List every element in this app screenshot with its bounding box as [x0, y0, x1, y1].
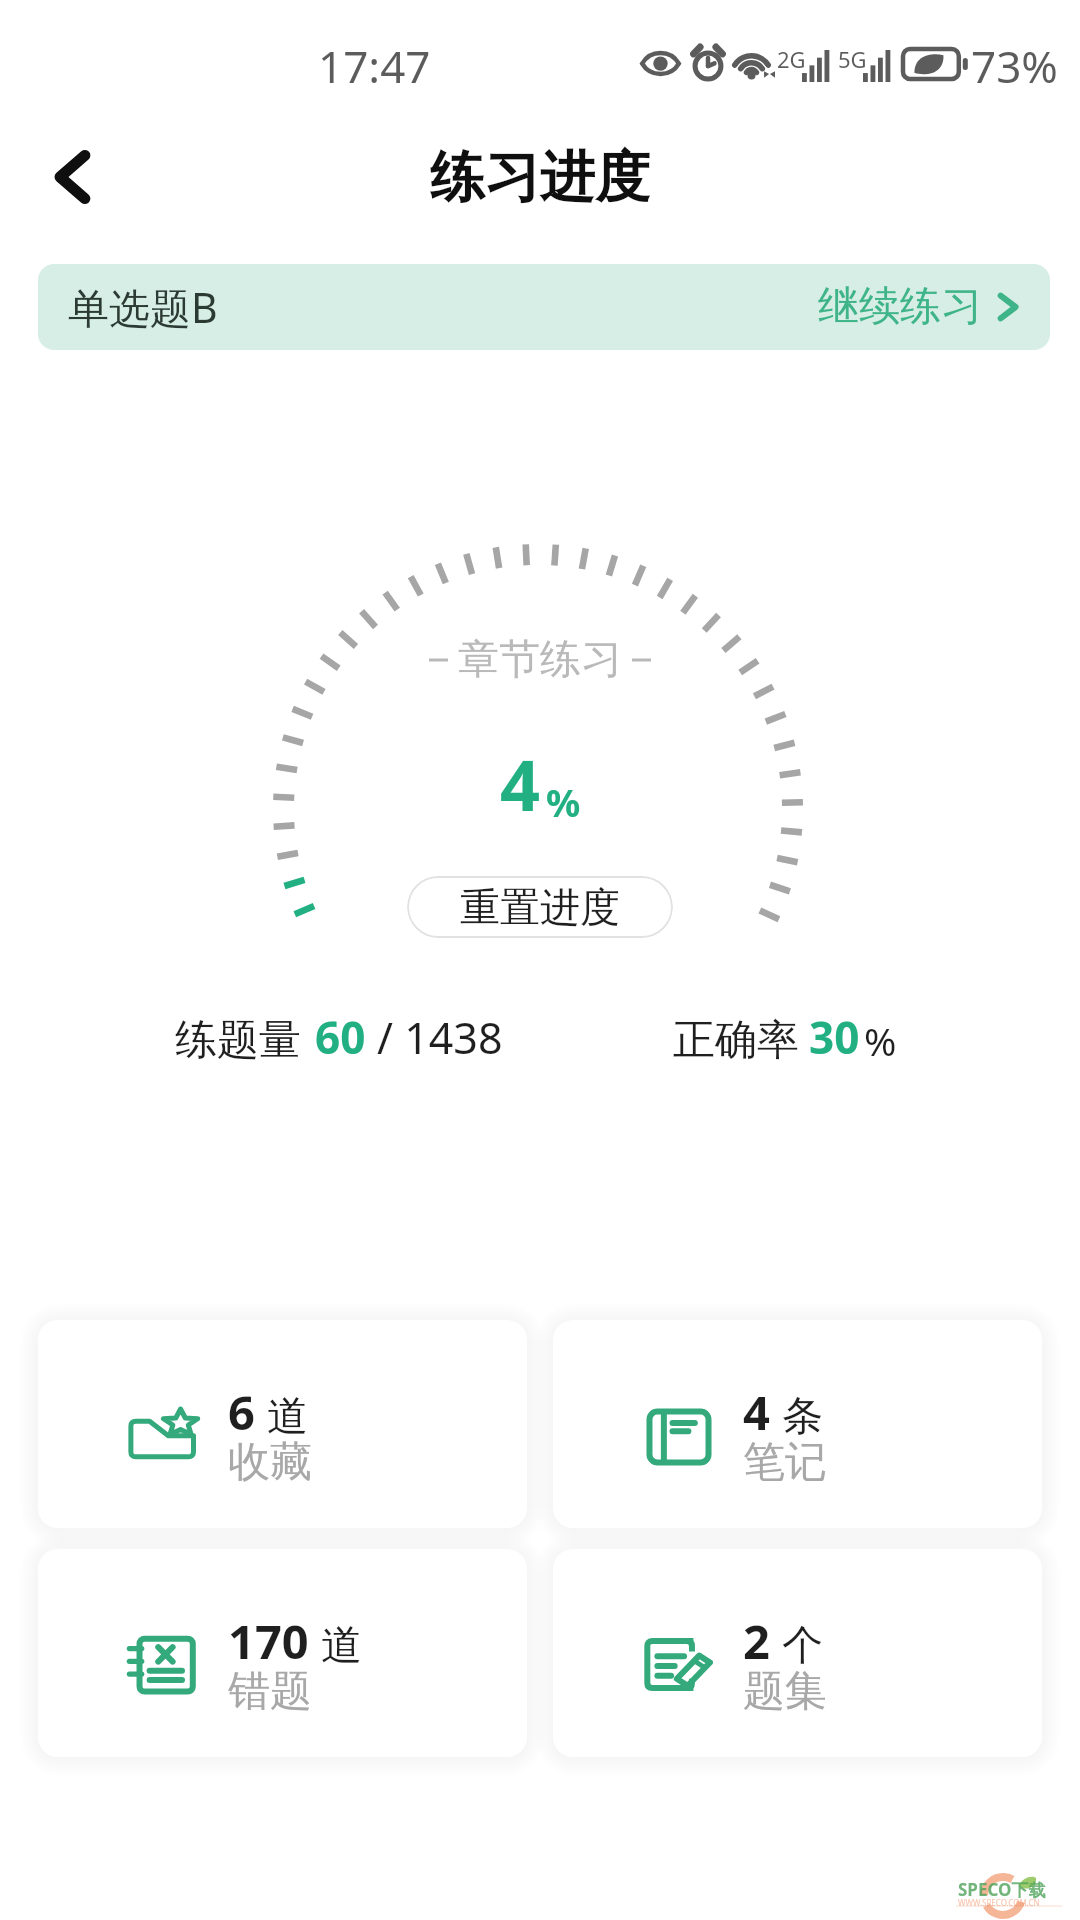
staticText: %	[546, 776, 581, 828]
staticText: 17:47	[318, 36, 431, 96]
staticText: 30	[809, 1007, 860, 1067]
staticText: 错题	[228, 1665, 312, 1718]
staticText: 6	[228, 1380, 255, 1444]
staticText: 继续练习	[818, 281, 982, 333]
button[interactable]: 单选题B	[38, 264, 1050, 350]
staticText: 练题量	[175, 1014, 301, 1067]
staticText: / 1438	[377, 1008, 503, 1067]
staticText: 题集	[743, 1665, 827, 1718]
staticText: %	[864, 1014, 897, 1067]
button[interactable]: Back	[36, 140, 110, 214]
staticText: 4	[500, 736, 541, 831]
staticText: 正确率	[673, 1014, 799, 1067]
staticText: 道	[267, 1391, 308, 1443]
staticText: 60	[315, 1007, 366, 1067]
staticText: 170	[228, 1609, 309, 1673]
staticText: 章节练习	[458, 634, 622, 686]
staticText: 笔记	[743, 1436, 827, 1489]
button[interactable]: 4	[553, 1320, 1042, 1528]
staticText: SPECO下载	[958, 1878, 1046, 1901]
button[interactable]: 重置进度	[407, 876, 673, 938]
staticText: 练习进度	[430, 143, 650, 212]
staticText: 条	[782, 1391, 823, 1443]
staticText: 4	[743, 1380, 770, 1444]
button[interactable]: 2	[553, 1549, 1042, 1757]
staticText: 2	[743, 1609, 770, 1673]
button[interactable]: 6	[38, 1320, 527, 1528]
staticText: 2G	[777, 44, 806, 74]
button[interactable]: 170	[38, 1549, 527, 1757]
staticText: 单选题B	[68, 279, 218, 335]
staticText: 道	[321, 1620, 362, 1672]
staticText: 73%	[971, 36, 1058, 96]
staticText: 个	[782, 1620, 823, 1672]
staticText: WWW.SPECO.COM.CN	[958, 1897, 1040, 1908]
staticText: 收藏	[228, 1436, 312, 1489]
staticText: 5G	[838, 44, 867, 74]
staticText: 重置进度	[460, 882, 620, 932]
